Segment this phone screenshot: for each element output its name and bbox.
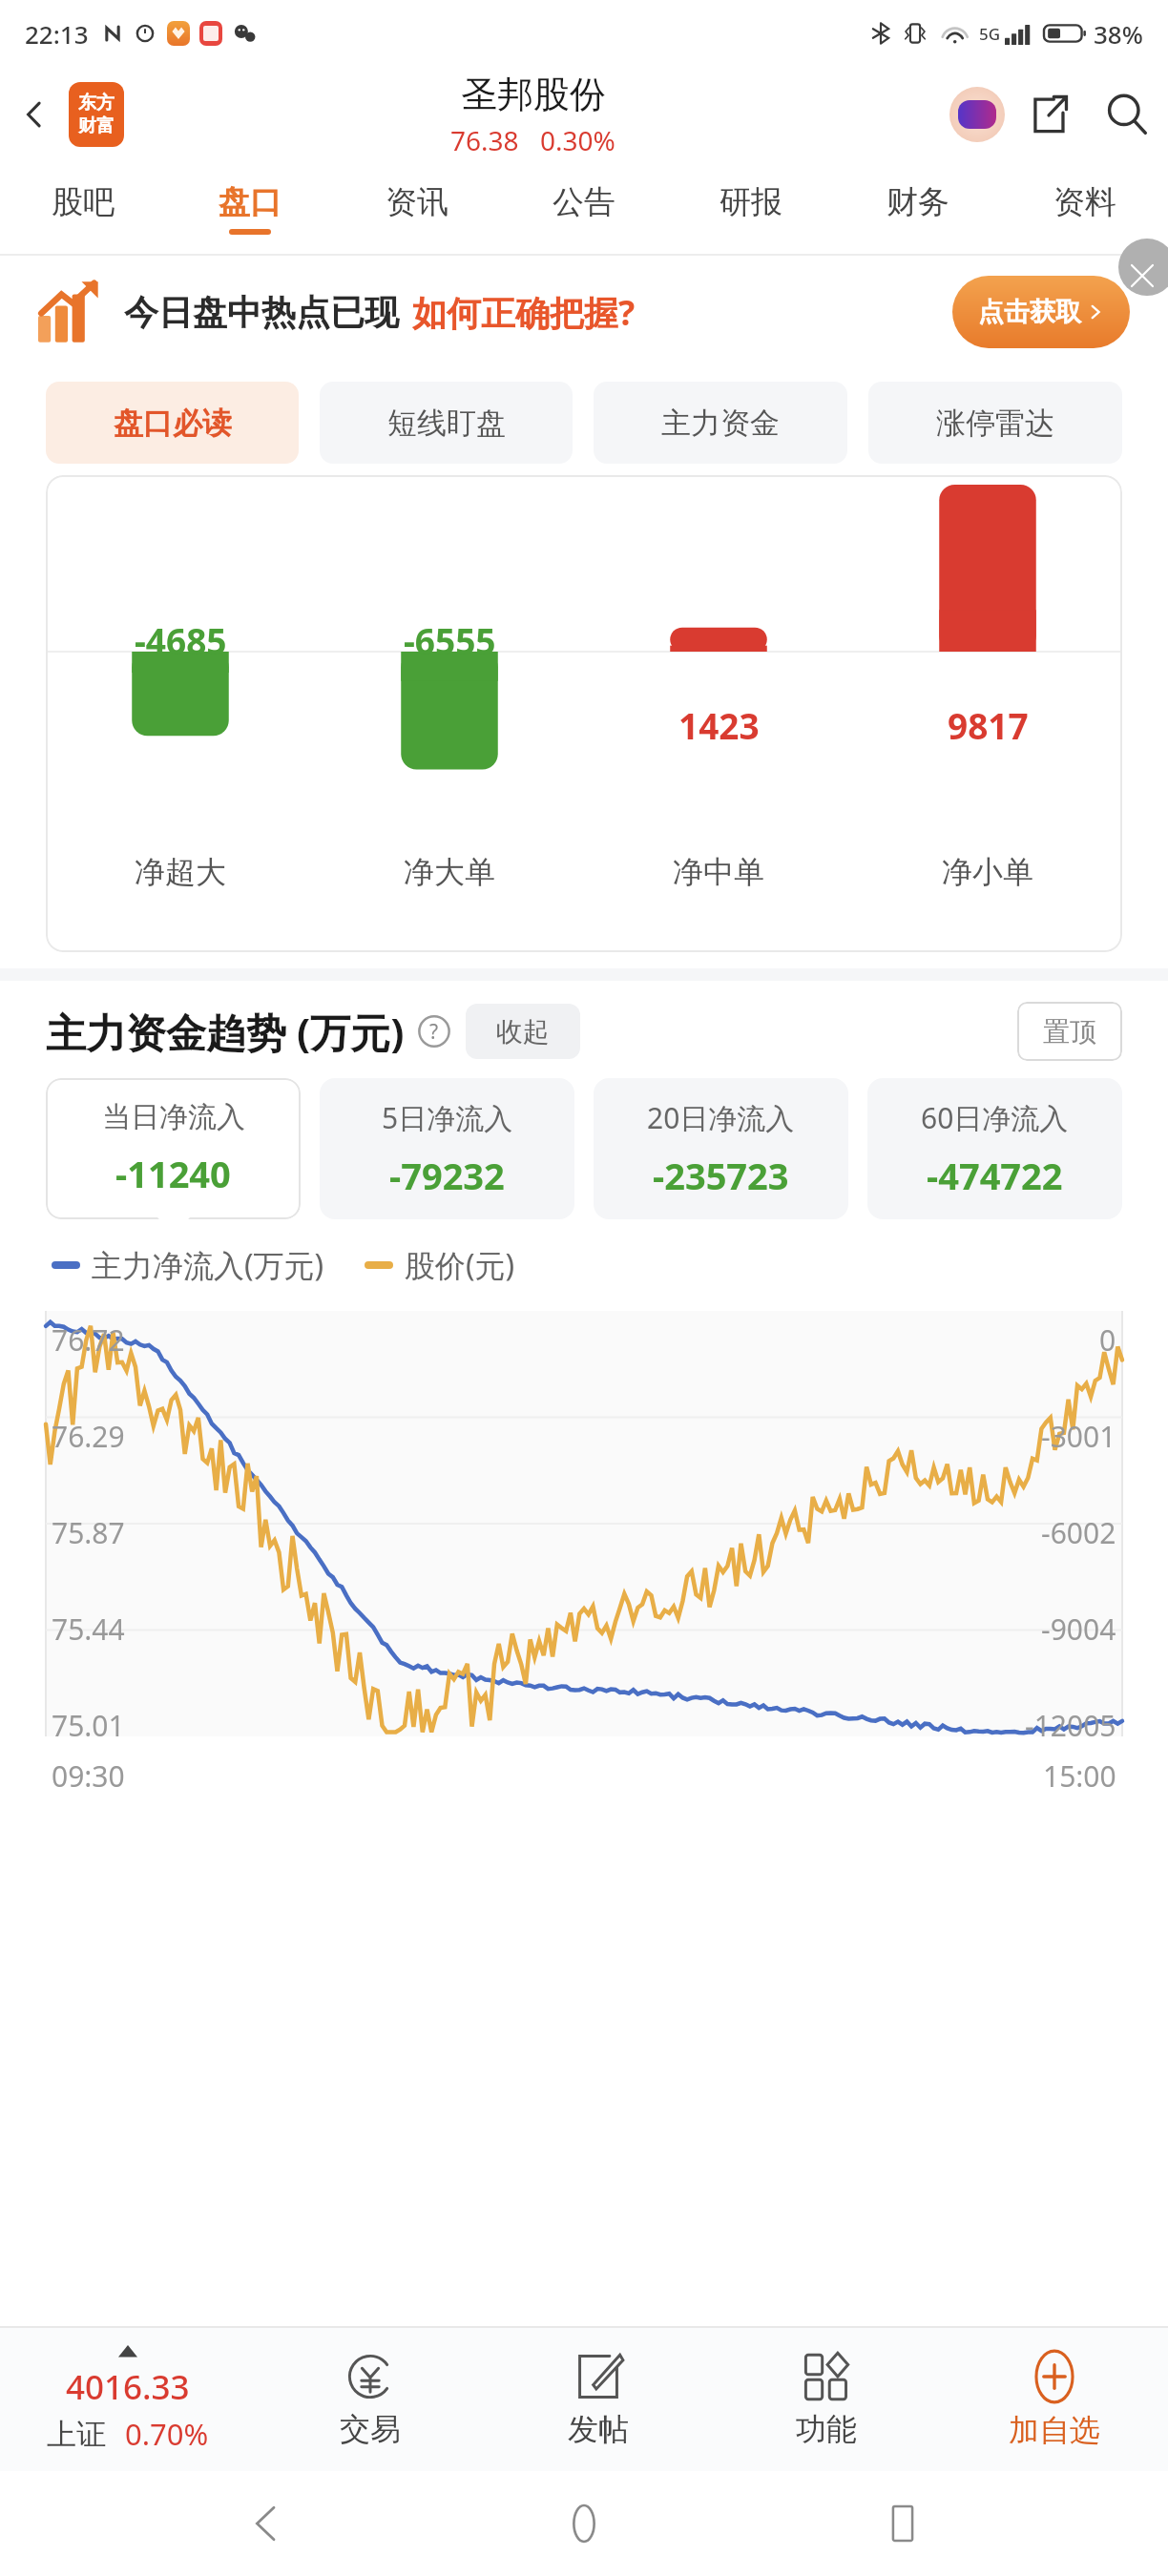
staticText: 净超大 (135, 853, 226, 891)
staticText: -4685 (135, 616, 227, 664)
button[interactable]: 5日净流入 (320, 1078, 574, 1219)
staticText: 当日净流入 (102, 1099, 245, 1135)
staticText: 15:00 (1043, 1756, 1116, 1796)
staticText: 资料 (1053, 182, 1116, 222)
staticText: 短线盯盘 (387, 405, 506, 442)
button[interactable]: 圣邦股份 (450, 72, 615, 158)
staticText: 盘口必读 (114, 405, 232, 442)
button[interactable]: Back (0, 67, 69, 162)
staticText: 主力资金 (661, 405, 780, 442)
button[interactable]: 收起 (466, 1004, 580, 1059)
button[interactable]: Close banner (1118, 239, 1168, 296)
staticText: 交易 (340, 2410, 401, 2448)
button[interactable]: 短线盯盘 (320, 382, 573, 464)
staticText: 加自选 (1009, 2411, 1100, 2449)
staticText: 75.87 (52, 1513, 125, 1552)
staticText: 75.44 (52, 1610, 125, 1649)
button[interactable]: -6555 (315, 475, 584, 952)
staticText: 0.70% (125, 2414, 209, 2454)
button[interactable]: 资讯 (333, 162, 500, 254)
button[interactable]: 20日净流入 (594, 1078, 848, 1219)
staticText: 财富 (78, 114, 115, 137)
staticText: 76.38 (450, 122, 519, 158)
staticText: 1423 (678, 701, 760, 749)
staticText: 发帖 (568, 2410, 629, 2448)
staticText: 0 (1099, 1320, 1116, 1360)
staticText: 75.01 (52, 1706, 125, 1745)
staticText: 主力资金趋势 (万元) (46, 1005, 405, 1059)
staticText: -6002 (1041, 1513, 1116, 1552)
staticText: 20日净流入 (647, 1098, 795, 1137)
button[interactable]: 东方 (69, 82, 124, 147)
button[interactable]: Back (214, 2471, 319, 2576)
staticText: 公告 (553, 182, 615, 222)
staticText: 财务 (886, 182, 949, 222)
staticText: 上证 (47, 2416, 106, 2453)
staticText: 资讯 (386, 182, 448, 222)
staticText: 今日盘中热点已现 (124, 291, 399, 334)
button[interactable]: Share (1012, 77, 1086, 152)
staticText: 盘口 (219, 182, 282, 222)
staticText: 净小单 (942, 853, 1033, 891)
staticText: -474722 (927, 1151, 1063, 1200)
button[interactable]: 置顶 (1017, 1002, 1122, 1061)
button[interactable]: 加自选 (940, 2328, 1168, 2471)
staticText: -3001 (1041, 1417, 1116, 1456)
button[interactable]: 财务 (834, 162, 1001, 254)
staticText: 置顶 (1043, 1015, 1096, 1049)
button[interactable]: Recents (850, 2471, 955, 2576)
button[interactable]: 60日净流入 (867, 1078, 1122, 1219)
staticText: -79232 (389, 1151, 505, 1200)
button[interactable]: Home (532, 2471, 636, 2576)
staticText: 研报 (720, 182, 782, 222)
staticText: 38% (1094, 17, 1143, 51)
button[interactable]: 研报 (667, 162, 834, 254)
button[interactable]: 盘口 (166, 162, 333, 254)
button[interactable]: 发帖 (484, 2328, 712, 2471)
button[interactable]: 公告 (500, 162, 667, 254)
staticText: 5G (979, 23, 1001, 45)
staticText: 收起 (496, 1015, 550, 1049)
staticText: 东方 (78, 92, 115, 114)
staticText: 涨停雷达 (936, 405, 1054, 442)
staticText: ? (429, 1018, 439, 1046)
staticText: -6555 (404, 616, 496, 664)
button[interactable]: 4016.33 (0, 2328, 256, 2471)
button[interactable]: 功能 (712, 2328, 940, 2471)
button[interactable]: 资料 (1001, 162, 1168, 254)
staticText: 如何正确把握? (412, 289, 636, 336)
button[interactable]: AI assistant (943, 80, 1012, 149)
button[interactable]: 9817 (853, 475, 1122, 952)
staticText: 22:13 (25, 17, 89, 51)
button[interactable]: 涨停雷达 (868, 382, 1122, 464)
button[interactable]: Help (418, 1015, 450, 1048)
button[interactable]: 盘口必读 (46, 382, 299, 464)
button[interactable]: 当日净流入 (46, 1078, 301, 1219)
staticText: 0.30% (540, 122, 615, 158)
staticText: 4016.33 (66, 2364, 190, 2410)
button[interactable]: -4685 (46, 475, 315, 952)
button[interactable]: 交易 (256, 2328, 484, 2471)
button[interactable]: 主力资金 (594, 382, 847, 464)
staticText: 9817 (948, 701, 1029, 749)
staticText: 圣邦股份 (461, 72, 606, 117)
staticText: 60日净流入 (921, 1098, 1069, 1137)
staticText: 点击获取 (978, 296, 1081, 328)
staticText: 76.72 (52, 1320, 125, 1360)
button[interactable]: 1423 (584, 475, 853, 952)
button[interactable]: 股吧 (0, 162, 166, 254)
staticText: 功能 (796, 2410, 857, 2448)
staticText: -12005 (1025, 1706, 1116, 1745)
staticText: 股吧 (52, 182, 115, 222)
staticText: 主力净流入(万元) (92, 1244, 324, 1286)
staticText: 净大单 (404, 853, 495, 891)
staticText: 5日净流入 (382, 1098, 513, 1137)
staticText: 净中单 (673, 853, 764, 891)
staticText: 09:30 (52, 1756, 125, 1796)
staticText: 76.29 (52, 1417, 125, 1456)
staticText: -235723 (653, 1151, 789, 1200)
button[interactable]: 点击获取 (952, 276, 1130, 348)
staticText: -9004 (1041, 1610, 1116, 1649)
button[interactable]: Search (1086, 73, 1168, 156)
staticText: -11240 (115, 1149, 231, 1198)
